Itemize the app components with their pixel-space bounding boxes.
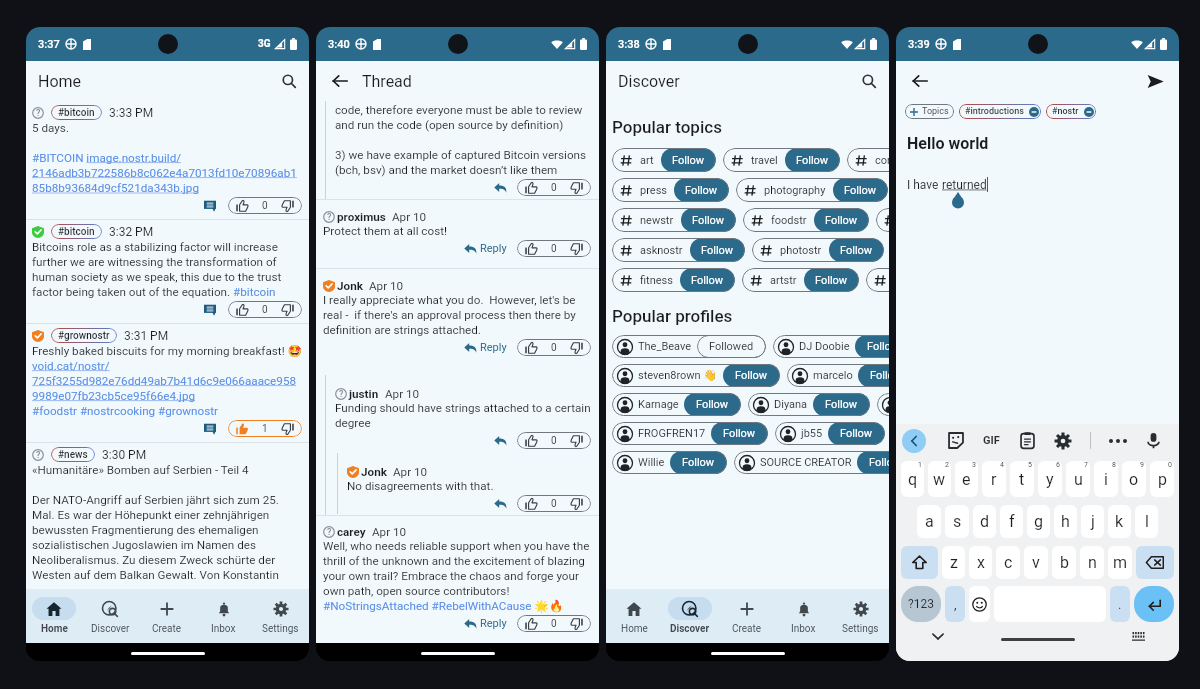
button[interactable]: Emoji <box>969 586 990 622</box>
button[interactable]: g <box>1027 505 1050 538</box>
button[interactable]: Reply <box>462 339 509 356</box>
button[interactable] <box>492 495 509 512</box>
button[interactable]: 0 <box>236 301 294 318</box>
button[interactable]: Discover <box>662 589 718 643</box>
button[interactable]: Shift <box>901 546 938 579</box>
button[interactable]: , <box>945 586 965 622</box>
button[interactable]: f <box>1000 505 1023 538</box>
button[interactable]: x <box>969 546 992 579</box>
button[interactable]: w <box>928 461 951 497</box>
button[interactable]: x <box>876 208 889 232</box>
button[interactable]: foodstr <box>743 208 869 232</box>
button[interactable]: j <box>1081 505 1104 538</box>
button[interactable]: Willie <box>612 451 727 474</box>
button[interactable]: x <box>877 393 889 416</box>
button[interactable]: q <box>901 461 924 497</box>
button[interactable]: marcelo <box>787 364 889 387</box>
button[interactable]: b <box>1052 546 1076 579</box>
button[interactable]: Settings <box>252 589 309 643</box>
button[interactable]: asknostr <box>612 238 745 262</box>
button[interactable]: Search <box>857 69 881 93</box>
button[interactable] <box>492 179 509 196</box>
button[interactable]: photography <box>736 178 888 202</box>
button[interactable]: Karnage <box>612 393 741 416</box>
button[interactable]: ?123 <box>901 586 941 622</box>
button[interactable]: press <box>612 178 729 202</box>
button[interactable]: h <box>1054 505 1077 538</box>
button[interactable]: #introductions <box>965 104 1039 119</box>
button[interactable]: #bitcoin <box>58 105 95 120</box>
button[interactable]: c <box>996 546 1020 579</box>
button[interactable]: Create <box>138 589 195 643</box>
button[interactable]: 0 <box>525 339 583 356</box>
button[interactable]: Comment <box>203 422 217 436</box>
button[interactable]: 0 <box>525 179 583 196</box>
button[interactable]: 0 <box>525 240 583 257</box>
button[interactable]: steven8rown 👋 <box>612 364 780 387</box>
button[interactable]: p <box>1150 461 1174 497</box>
button[interactable]: artstr <box>742 268 859 292</box>
button[interactable]: art <box>612 148 716 172</box>
button[interactable]: SOURCE CREATOR <box>734 451 889 474</box>
button[interactable]: Reply <box>462 615 509 632</box>
button[interactable]: DJ Doobie <box>773 335 889 358</box>
button[interactable]: u <box>1066 461 1090 497</box>
button[interactable]: l <box>1135 505 1158 538</box>
button[interactable]: 0 <box>525 432 583 449</box>
button[interactable]: Comment <box>203 303 217 317</box>
button[interactable]: corny <box>847 148 889 172</box>
button[interactable]: #nostr <box>1052 104 1094 119</box>
button[interactable]: The_Beave <box>612 335 766 358</box>
button[interactable]: n <box>1080 546 1104 579</box>
button[interactable]: m <box>1108 546 1132 579</box>
button[interactable]: Collapse toolbar <box>902 429 926 453</box>
button[interactable]: Settings <box>832 589 889 643</box>
button[interactable]: xx <box>866 268 889 292</box>
button[interactable]: 0 <box>525 495 583 512</box>
button[interactable]: Discover <box>82 589 138 643</box>
button[interactable]: r <box>982 461 1006 497</box>
button[interactable]: travel <box>723 148 840 172</box>
button[interactable]: y <box>1038 461 1062 497</box>
button[interactable]: Clipboard <box>1019 432 1036 449</box>
button[interactable]: fitness <box>612 268 735 292</box>
button[interactable]: Enter <box>1134 586 1174 622</box>
button[interactable]: i <box>1094 461 1118 497</box>
button[interactable]: Settings <box>1054 432 1072 450</box>
button[interactable]: a <box>917 505 941 538</box>
button[interactable]: photostr <box>752 238 884 262</box>
button[interactable]: o <box>1122 461 1146 497</box>
button[interactable]: FROGFREN17 <box>612 422 768 445</box>
button[interactable]: s <box>945 505 969 538</box>
button[interactable]: 1 <box>236 420 294 437</box>
button[interactable]: e <box>955 461 978 497</box>
button[interactable]: Comment <box>203 199 217 213</box>
button[interactable]: newstr <box>612 208 736 232</box>
button[interactable]: Home <box>26 589 82 643</box>
button[interactable]: z <box>942 546 965 579</box>
button[interactable]: 0 <box>525 615 583 632</box>
button[interactable]: Backspace <box>1136 546 1174 579</box>
button[interactable]: v <box>1024 546 1048 579</box>
button[interactable]: d <box>973 505 996 538</box>
button[interactable]: . <box>1110 586 1130 622</box>
button[interactable]: Topics <box>910 104 949 119</box>
button[interactable]: k <box>1108 505 1131 538</box>
button[interactable]: jb55 <box>775 422 885 445</box>
button[interactable]: Change keyboard <box>1132 631 1145 641</box>
button[interactable]: Hide keyboard <box>930 628 946 644</box>
button[interactable]: Inbox <box>195 589 252 643</box>
button[interactable]: Inbox <box>775 589 832 643</box>
button[interactable]: Reply <box>462 240 509 257</box>
button[interactable]: Voice input <box>1145 432 1162 449</box>
button[interactable]: Search <box>277 69 301 93</box>
button[interactable]: Back <box>908 69 932 93</box>
button[interactable]: #news <box>58 447 88 462</box>
button[interactable]: Create <box>718 589 775 643</box>
button[interactable]: #bitcoin <box>58 224 95 239</box>
button[interactable]: Back <box>328 69 352 93</box>
button[interactable]: Stickers <box>947 432 964 449</box>
button[interactable]: t <box>1010 461 1034 497</box>
button[interactable]: 0 <box>236 197 294 214</box>
